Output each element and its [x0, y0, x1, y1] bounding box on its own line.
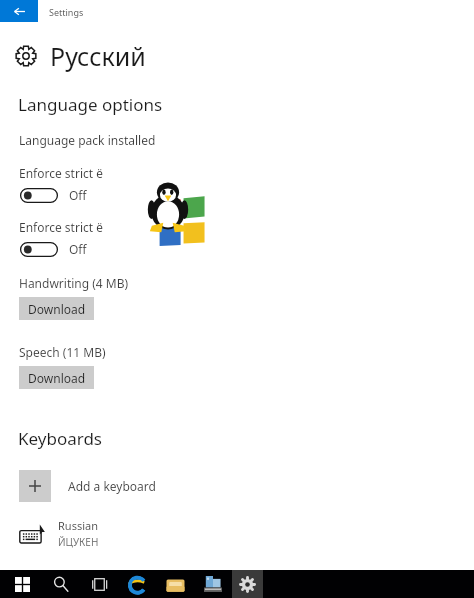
button[interactable]: Download [19, 366, 94, 389]
staticText: Keyboards [18, 427, 102, 450]
button[interactable]: Store [196, 570, 230, 598]
button[interactable]: Internet Explorer [120, 570, 154, 598]
staticText: Add a keyboard [68, 478, 156, 494]
staticText: Handwriting (4 MB) [19, 275, 129, 291]
button[interactable]: Start [5, 570, 39, 598]
staticText: Russian [58, 518, 98, 533]
staticText: Download [28, 301, 86, 317]
button[interactable]: Russian [19, 518, 99, 549]
button[interactable]: Settings [232, 570, 263, 598]
staticText: Off [69, 187, 87, 203]
staticText: ЙЦУКЕН [58, 535, 99, 549]
button[interactable]: File Explorer [158, 570, 192, 598]
button[interactable]: Download [19, 297, 94, 320]
staticText: Download [28, 370, 86, 386]
button[interactable]: Toggle off [20, 242, 58, 257]
button[interactable]: Toggle off [20, 188, 58, 203]
staticText: Settings [49, 6, 84, 18]
button[interactable]: Search [44, 570, 78, 598]
staticText: Language options [18, 93, 163, 116]
staticText: Русский [50, 39, 146, 73]
button[interactable]: Add a keyboard [19, 470, 156, 502]
staticText: Enforce strict ё [19, 219, 103, 235]
button[interactable]: Back [0, 0, 38, 22]
staticText: Enforce strict ё [19, 165, 103, 181]
button[interactable]: Task view [82, 570, 116, 598]
staticText: Speech (11 MB) [19, 344, 106, 360]
staticText: Language pack installed [19, 132, 156, 148]
staticText: Off [69, 241, 87, 257]
